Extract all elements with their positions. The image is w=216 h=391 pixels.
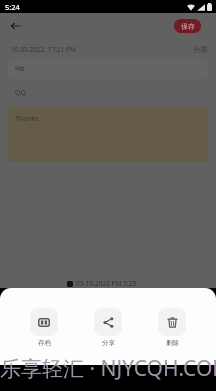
staticText: 保存: [181, 22, 195, 31]
staticText: 存档: [38, 339, 51, 347]
button[interactable]: 删除: [158, 308, 186, 347]
staticText: 分类: [193, 45, 208, 54]
button[interactable]: Back: [5, 15, 25, 37]
staticText: Hb: [15, 64, 25, 74]
staticText: 乐享轻汇 · NJYCQH.COM: [0, 354, 216, 383]
staticText: 删除: [166, 339, 179, 347]
staticText: 5:24: [5, 2, 20, 12]
button[interactable]: 分享: [94, 308, 122, 347]
staticText: 10.03.2022, 17:21 PM: [11, 45, 76, 54]
staticText: 分享: [102, 339, 115, 347]
staticText: QQ: [15, 88, 26, 98]
button[interactable]: 存档: [30, 308, 58, 347]
staticText: Thanks: [15, 114, 39, 124]
staticText: 03-10-2022 PM 5:23: [76, 279, 137, 288]
button[interactable]: 保存: [174, 19, 201, 33]
